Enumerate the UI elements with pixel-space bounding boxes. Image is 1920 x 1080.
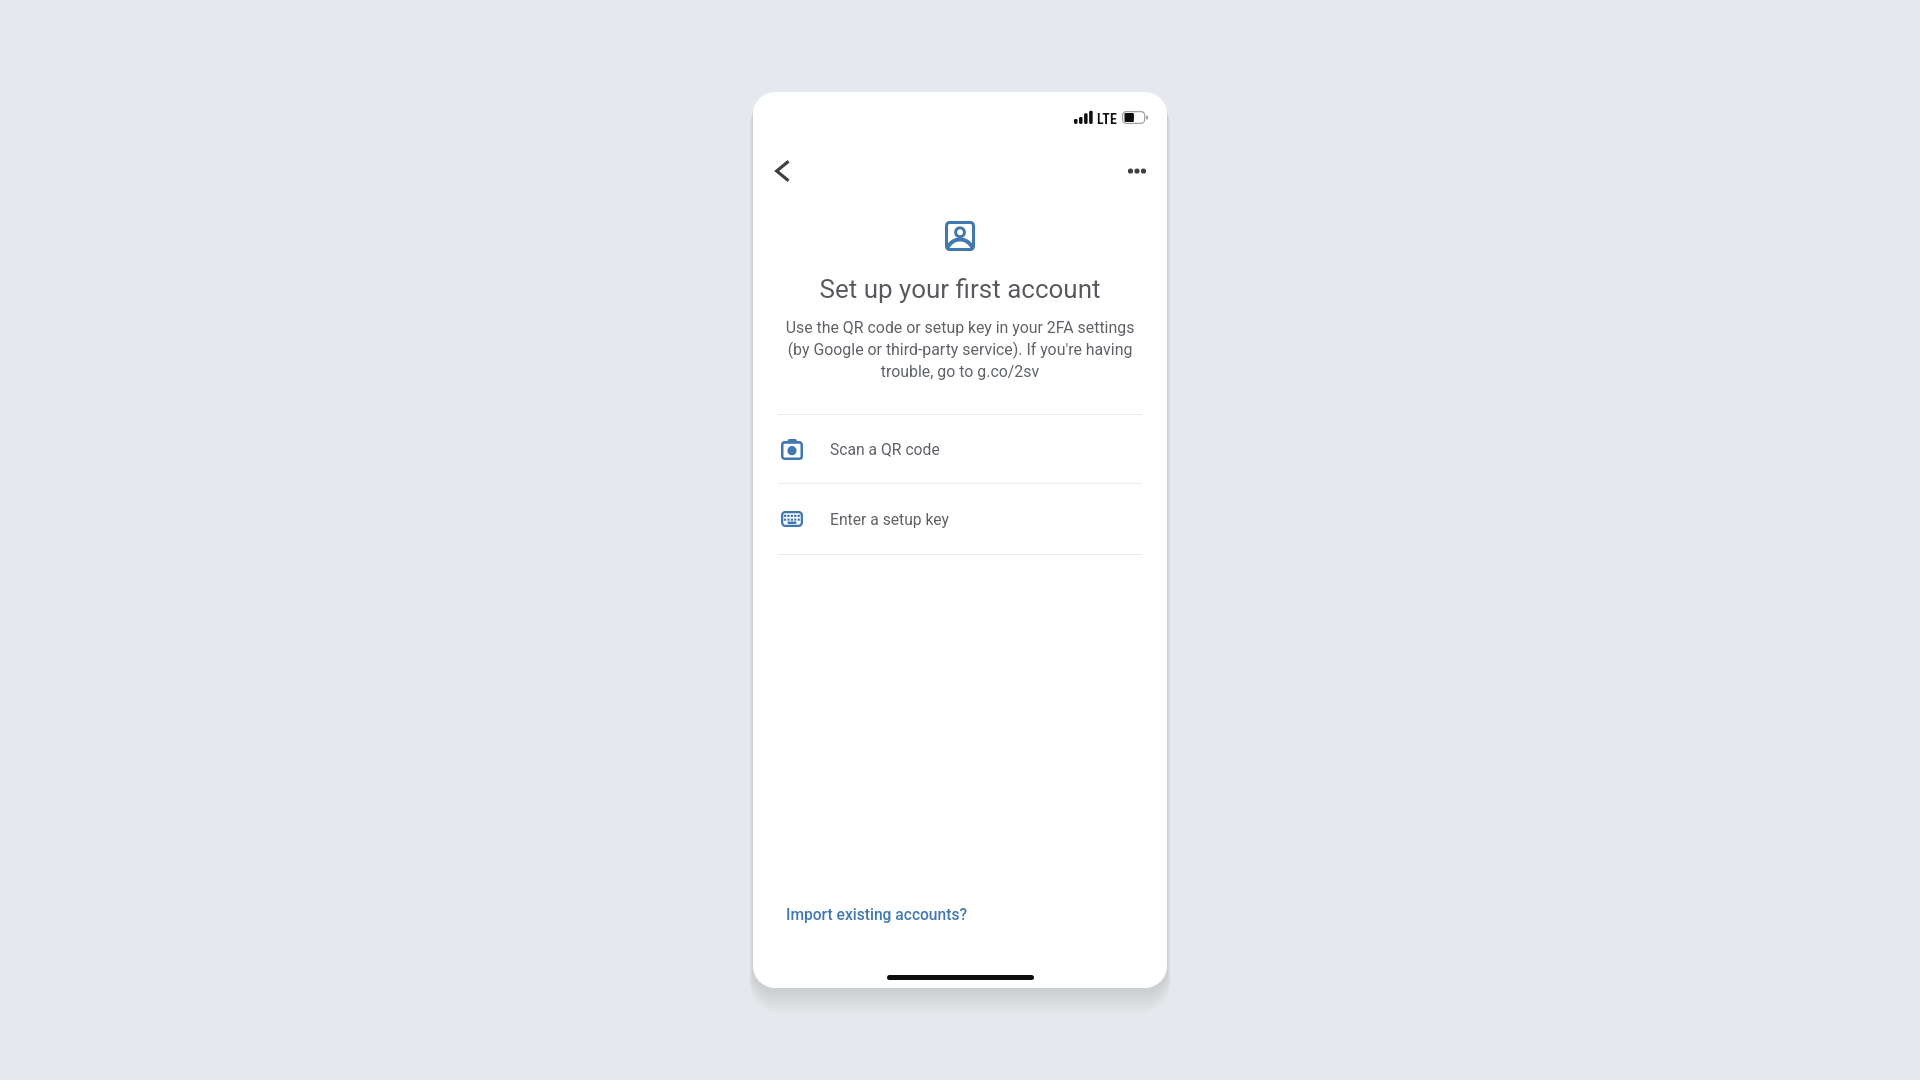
button[interactable]: More options: [1113, 147, 1161, 195]
button[interactable]: Import existing accounts?: [778, 900, 976, 930]
staticText: Enter a setup key: [830, 510, 949, 528]
staticText: LTE: [1097, 111, 1117, 127]
staticText: Scan a QR code: [830, 440, 940, 458]
staticText: Use the QR code or setup key in your 2FA…: [781, 318, 1139, 381]
button[interactable]: Back: [758, 147, 806, 195]
staticText: Import existing accounts?: [786, 906, 968, 924]
button[interactable]: Enter a setup key: [753, 484, 1167, 554]
staticText: Set up your first account: [753, 274, 1167, 304]
button[interactable]: Scan a QR code: [753, 415, 1167, 483]
